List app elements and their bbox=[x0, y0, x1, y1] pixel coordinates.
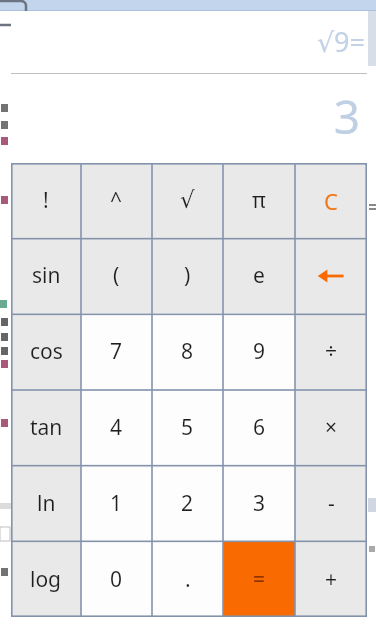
button[interactable]: C bbox=[295, 163, 367, 238]
button[interactable]: sin bbox=[11, 238, 81, 313]
button[interactable]: 5 bbox=[152, 389, 223, 465]
button[interactable]: ln bbox=[11, 465, 81, 541]
button[interactable]: ÷ bbox=[295, 313, 367, 389]
button[interactable]: tan bbox=[11, 389, 81, 465]
button[interactable]: . bbox=[152, 541, 223, 617]
button[interactable]: - bbox=[295, 465, 367, 541]
button[interactable]: 3 bbox=[223, 465, 295, 541]
button[interactable]: √ bbox=[152, 163, 223, 238]
button[interactable]: 8 bbox=[152, 313, 223, 389]
staticText: ^ bbox=[110, 186, 123, 215]
button[interactable]: log bbox=[11, 541, 81, 617]
staticText: 2 bbox=[181, 489, 194, 518]
button[interactable]: = bbox=[223, 541, 295, 617]
button[interactable]: ) bbox=[152, 238, 223, 313]
staticText: + bbox=[325, 565, 338, 594]
staticText: 0 bbox=[110, 565, 123, 594]
staticText: 3 bbox=[333, 85, 360, 148]
button[interactable]: 0 bbox=[81, 541, 152, 617]
button[interactable]: × bbox=[295, 389, 367, 465]
staticText: 5 bbox=[181, 413, 194, 442]
button[interactable]: 2 bbox=[152, 465, 223, 541]
staticText: ln bbox=[37, 489, 56, 518]
button[interactable]: + bbox=[295, 541, 367, 617]
staticText: 8 bbox=[181, 337, 194, 366]
button[interactable]: 9 bbox=[223, 313, 295, 389]
staticText: 3 bbox=[253, 489, 266, 518]
button[interactable]: 1 bbox=[81, 465, 152, 541]
button[interactable]: e bbox=[223, 238, 295, 313]
staticText: = bbox=[253, 565, 266, 594]
staticText: 6 bbox=[253, 413, 266, 442]
staticText: tan bbox=[30, 413, 63, 442]
staticText: e bbox=[253, 261, 265, 290]
staticText: ( bbox=[113, 261, 120, 290]
staticText: ! bbox=[43, 186, 49, 215]
staticText: ÷ bbox=[325, 337, 338, 366]
staticText: cos bbox=[30, 337, 63, 366]
button[interactable]: ( bbox=[81, 238, 152, 313]
staticText: 1 bbox=[110, 489, 123, 518]
staticText: log bbox=[30, 565, 62, 594]
staticText: - bbox=[328, 489, 335, 518]
button[interactable]: 4 bbox=[81, 389, 152, 465]
staticText: ) bbox=[184, 261, 191, 290]
staticText: √ bbox=[180, 187, 195, 214]
staticText: π bbox=[252, 186, 266, 215]
button[interactable]: Backspace bbox=[295, 238, 367, 313]
button[interactable]: cos bbox=[11, 313, 81, 389]
staticText: . bbox=[185, 565, 191, 594]
staticText: 4 bbox=[110, 413, 123, 442]
button[interactable]: π bbox=[223, 163, 295, 238]
staticText: 9 bbox=[253, 337, 266, 366]
staticText: 7 bbox=[110, 337, 123, 366]
staticText: × bbox=[325, 413, 338, 442]
staticText: C bbox=[324, 186, 338, 216]
staticText: sin bbox=[32, 261, 61, 290]
button[interactable]: 7 bbox=[81, 313, 152, 389]
button[interactable]: ! bbox=[11, 163, 81, 238]
button[interactable]: 6 bbox=[223, 389, 295, 465]
button[interactable]: ^ bbox=[81, 163, 152, 238]
staticText: √9= bbox=[316, 23, 365, 60]
